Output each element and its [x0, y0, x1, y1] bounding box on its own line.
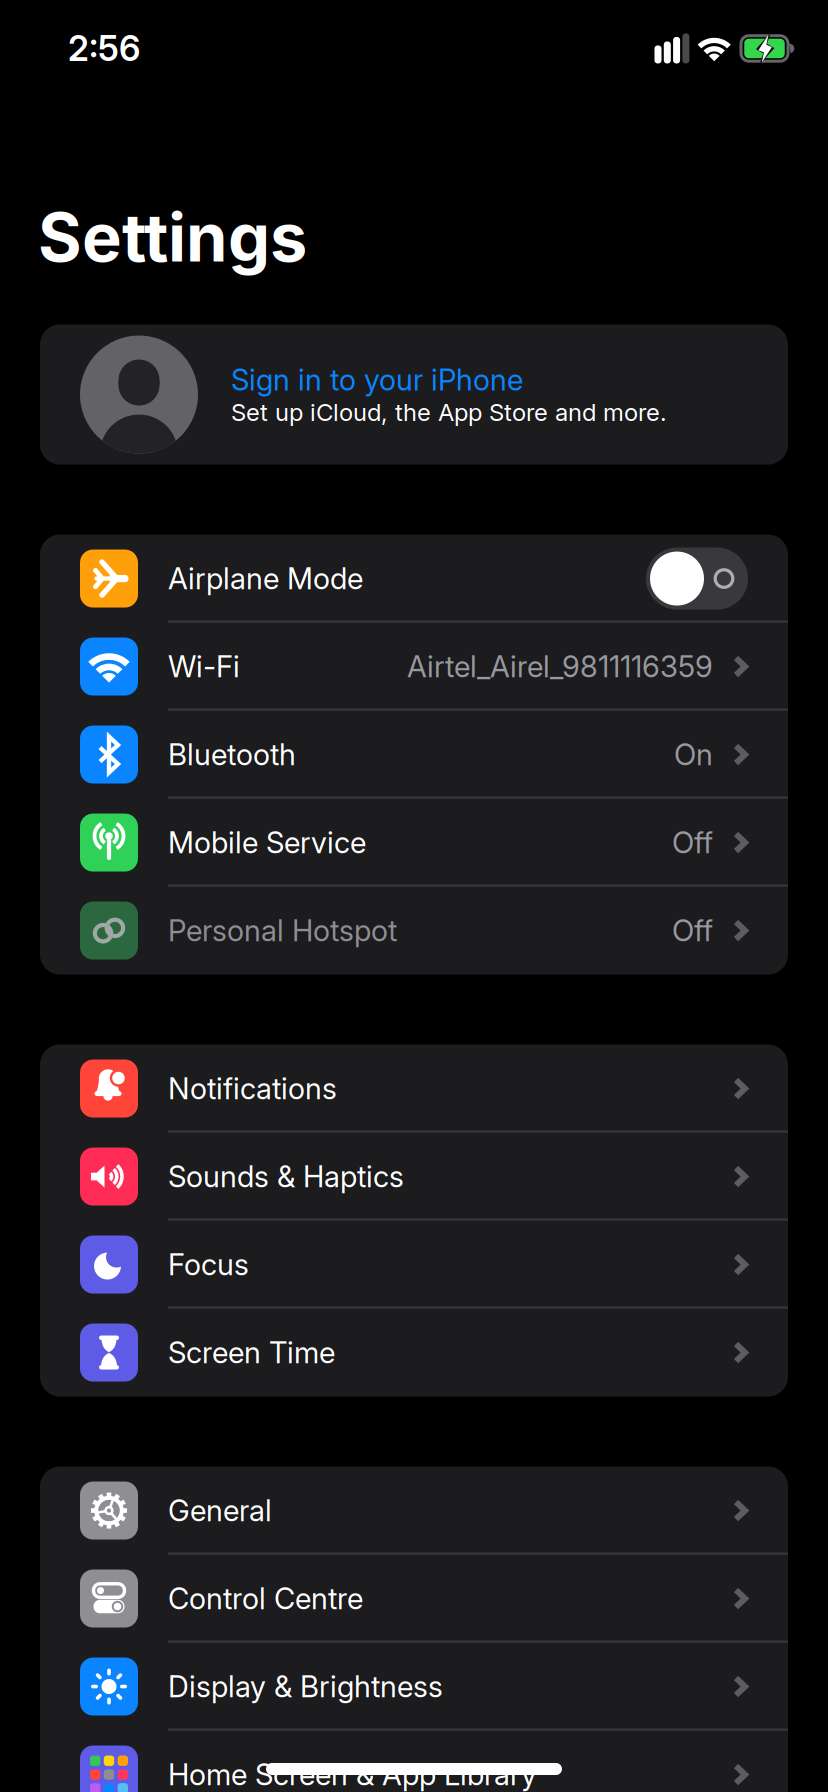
staticText: Display & Brightness — [168, 1669, 443, 1704]
button[interactable]: Airplane Mode — [40, 534, 788, 622]
staticText: Set up iCloud, the App Store and more. — [231, 398, 667, 426]
staticText: Control Centre — [168, 1581, 363, 1616]
button[interactable]: Personal Hotspot — [40, 886, 788, 974]
staticText: Mobile Service — [168, 825, 366, 860]
staticText: Focus — [168, 1247, 249, 1282]
button[interactable]: Focus — [40, 1220, 788, 1308]
staticText: Sounds & Haptics — [168, 1159, 404, 1194]
staticText: On — [674, 737, 713, 772]
staticText: Notifications — [168, 1071, 337, 1106]
button[interactable]: Airplane Mode — [646, 547, 748, 609]
staticText: Off — [672, 825, 713, 860]
staticText: Sign in to your iPhone — [231, 363, 523, 397]
button[interactable]: Wi-Fi — [40, 622, 788, 710]
button[interactable]: Mobile Service — [40, 798, 788, 886]
staticText: Settings — [38, 198, 307, 276]
staticText: Personal Hotspot — [168, 913, 397, 948]
staticText: Airplane Mode — [168, 561, 363, 596]
staticText: General — [168, 1493, 272, 1528]
staticText: Airtel_Airel_9811116359 — [407, 649, 713, 684]
staticText: Screen Time — [168, 1335, 335, 1370]
button[interactable]: Control Centre — [40, 1554, 788, 1642]
button[interactable]: Notifications — [40, 1044, 788, 1132]
staticText: Wi-Fi — [168, 649, 240, 684]
button[interactable]: General — [40, 1466, 788, 1554]
button[interactable]: Sign in to your iPhone — [0, 324, 788, 464]
button[interactable]: Home Screen & App Library — [40, 1730, 788, 1792]
button[interactable]: Bluetooth — [40, 710, 788, 798]
staticText: Off — [672, 913, 713, 948]
button[interactable]: Screen Time — [40, 1308, 788, 1396]
staticText: Bluetooth — [168, 737, 296, 772]
button[interactable]: Sounds & Haptics — [40, 1132, 788, 1220]
staticText: 2:56 — [68, 28, 140, 69]
button[interactable]: Display & Brightness — [40, 1642, 788, 1730]
staticText: Home Screen & App Library — [168, 1757, 537, 1792]
